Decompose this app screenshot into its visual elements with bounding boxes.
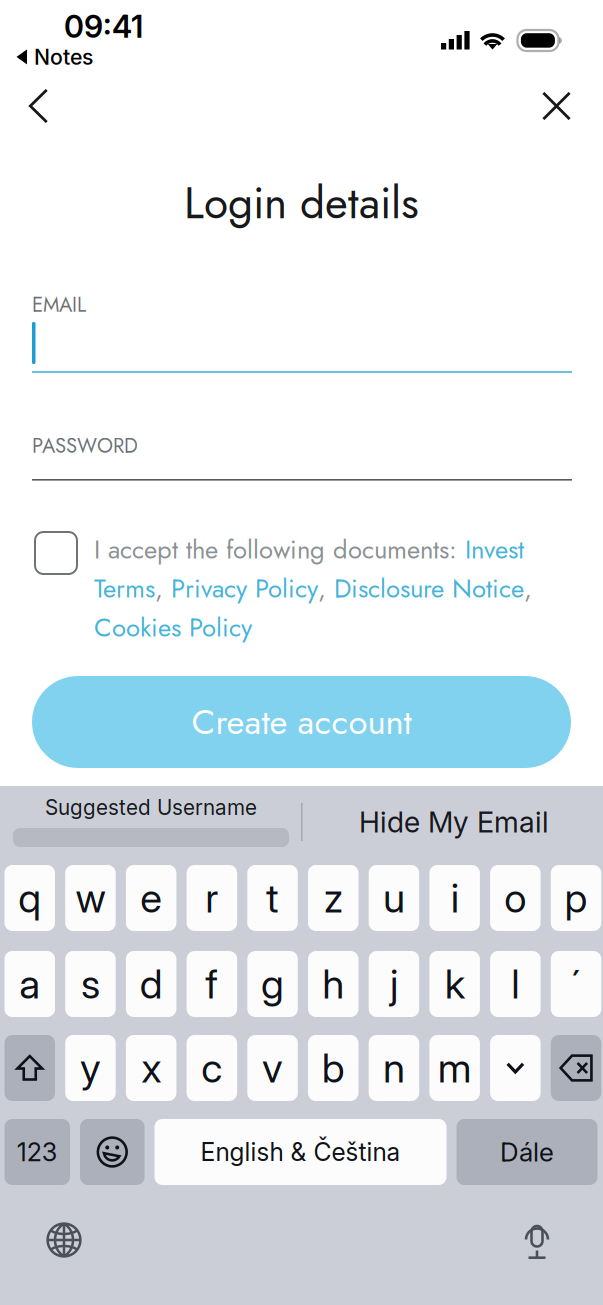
staticText: 123 bbox=[17, 1137, 58, 1167]
button[interactable]: m bbox=[429, 1035, 480, 1101]
button[interactable]: y bbox=[65, 1035, 116, 1101]
staticText: o bbox=[504, 874, 526, 922]
staticText: g bbox=[261, 960, 284, 1008]
staticText: Notes bbox=[34, 44, 93, 70]
button[interactable]: i bbox=[429, 865, 480, 931]
staticText: e bbox=[140, 874, 162, 922]
staticText: v bbox=[262, 1044, 283, 1092]
staticText: z bbox=[324, 874, 343, 922]
button[interactable]: c bbox=[187, 1035, 237, 1101]
button[interactable]: z bbox=[308, 865, 358, 931]
button[interactable]: Emoji bbox=[80, 1119, 144, 1185]
button[interactable]: b bbox=[308, 1035, 358, 1101]
staticText: a bbox=[19, 960, 40, 1008]
staticText: PASSWORD bbox=[32, 431, 138, 460]
button[interactable]: Suggested Username bbox=[3, 795, 299, 853]
staticText: I accept the following documents: bbox=[94, 531, 465, 568]
button[interactable]: 123 bbox=[4, 1119, 70, 1185]
staticText: b bbox=[322, 1044, 345, 1092]
button[interactable]: I accept the following documents bbox=[28, 525, 84, 581]
staticText: p bbox=[564, 874, 587, 922]
staticText: j bbox=[390, 960, 398, 1008]
staticText: Cookies Policy bbox=[94, 609, 252, 646]
staticText: c bbox=[201, 1044, 222, 1092]
button[interactable]: ´ bbox=[551, 951, 601, 1017]
button[interactable]: Create account bbox=[32, 676, 571, 768]
staticText: ´ bbox=[571, 961, 581, 1007]
staticText: n bbox=[383, 1044, 405, 1092]
staticText: Login details bbox=[184, 171, 419, 235]
button[interactable]: t bbox=[247, 865, 298, 931]
staticText: Terms bbox=[94, 570, 155, 607]
staticText: Disclosure Notice bbox=[334, 570, 524, 607]
staticText: r bbox=[205, 874, 218, 922]
button[interactable]: Dictation bbox=[509, 1213, 565, 1269]
staticText: q bbox=[18, 874, 41, 922]
button[interactable]: Close bbox=[521, 74, 591, 138]
staticText: Create account bbox=[191, 697, 411, 747]
button[interactable]: j bbox=[369, 951, 419, 1017]
button[interactable]: Hide My Email bbox=[309, 798, 599, 846]
staticText: k bbox=[445, 960, 465, 1008]
staticText: Suggested Username bbox=[45, 795, 257, 820]
button[interactable]: v bbox=[247, 1035, 298, 1101]
button[interactable]: Dále bbox=[456, 1119, 597, 1185]
button[interactable]: q bbox=[4, 865, 55, 931]
staticText: l bbox=[511, 960, 519, 1008]
staticText: 09:41 bbox=[64, 8, 143, 45]
staticText: Hide My Email bbox=[359, 805, 549, 839]
staticText: , bbox=[155, 570, 171, 607]
staticText: i bbox=[451, 874, 459, 922]
staticText: h bbox=[322, 960, 344, 1008]
button[interactable]: l bbox=[490, 951, 541, 1017]
button[interactable]: Shift bbox=[4, 1035, 55, 1101]
button[interactable]: o bbox=[490, 865, 541, 931]
button[interactable]: Delete bbox=[551, 1035, 601, 1101]
button[interactable]: s bbox=[65, 951, 116, 1017]
staticText: y bbox=[80, 1044, 101, 1092]
button[interactable]: Next keyboard bbox=[36, 1212, 92, 1268]
button[interactable]: Back bbox=[3, 74, 73, 138]
staticText: x bbox=[141, 1044, 161, 1092]
button[interactable]: d bbox=[126, 951, 176, 1017]
button[interactable]: p bbox=[551, 865, 601, 931]
staticText: Invest bbox=[465, 531, 524, 568]
button[interactable]: h bbox=[308, 951, 358, 1017]
staticText: , bbox=[318, 570, 334, 607]
staticText: f bbox=[205, 960, 218, 1008]
button[interactable]: u bbox=[369, 865, 419, 931]
button[interactable]: a bbox=[4, 951, 55, 1017]
staticText: Dále bbox=[500, 1136, 554, 1168]
staticText: w bbox=[75, 874, 105, 922]
button[interactable]: k bbox=[429, 951, 480, 1017]
staticText: m bbox=[438, 1044, 472, 1092]
button[interactable]: e bbox=[126, 865, 176, 931]
button[interactable]: n bbox=[369, 1035, 419, 1101]
staticText: u bbox=[383, 874, 405, 922]
button[interactable]: r bbox=[187, 865, 237, 931]
staticText: English & Čeština bbox=[200, 1137, 400, 1167]
staticText: , bbox=[524, 570, 532, 607]
button[interactable]: f bbox=[187, 951, 237, 1017]
button[interactable]: Caron bbox=[490, 1035, 541, 1101]
button[interactable]: w bbox=[65, 865, 116, 931]
button[interactable]: x bbox=[126, 1035, 176, 1101]
staticText: t bbox=[266, 874, 279, 922]
button[interactable]: g bbox=[247, 951, 298, 1017]
staticText: d bbox=[140, 960, 163, 1008]
button[interactable]: English & Čeština bbox=[154, 1119, 446, 1185]
staticText: s bbox=[81, 960, 100, 1008]
staticText: EMAIL bbox=[32, 290, 86, 319]
staticText: Privacy Policy bbox=[171, 570, 318, 607]
